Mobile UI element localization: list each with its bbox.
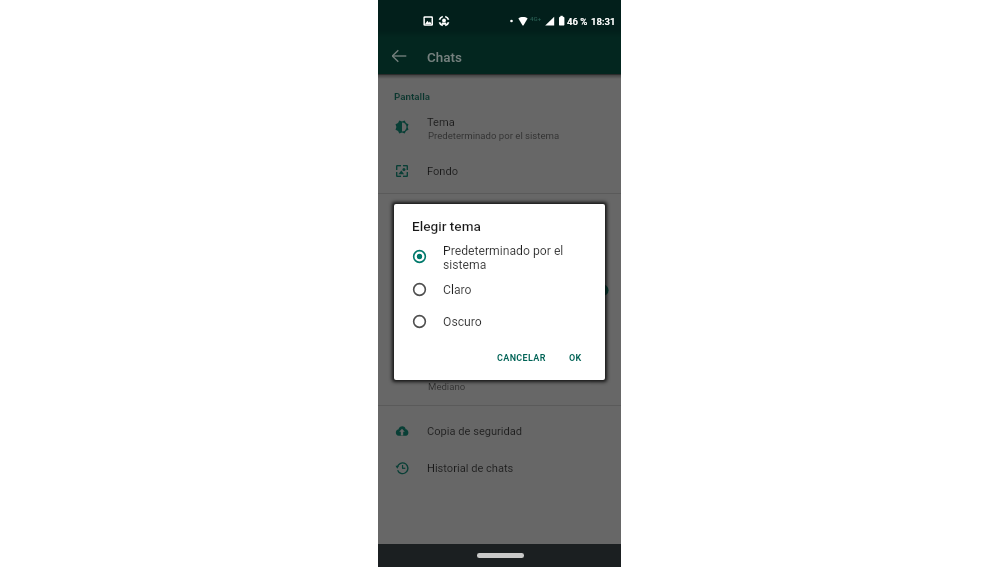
staticText: Pantalla [394,91,431,102]
button[interactable]: Tema [378,105,621,149]
button[interactable]: Oscuro [394,305,605,337]
staticText: Chats [427,50,462,66]
button[interactable]: OK [561,344,589,370]
staticText: Predeterminado por el sistema [443,244,577,272]
button[interactable]: CANCELAR [489,344,553,370]
staticText: Fondo [427,165,459,178]
staticText: Copia de seguridad [427,425,523,438]
button[interactable]: Claro [394,273,605,305]
staticText: 4G+ [530,15,542,22]
staticText: Mediano [428,381,466,392]
button[interactable]: Mediano [378,360,621,404]
staticText: Claro [443,283,472,297]
button[interactable]: Fondo [378,152,621,188]
staticText: Elegir tema [412,218,481,234]
staticText: Oscuro [443,315,482,329]
staticText: Predeterminado por el sistema [428,130,560,141]
button[interactable]: Back [388,43,412,67]
staticText: 46 % [567,16,588,27]
button[interactable]: Predeterminado por el sistema [394,240,605,273]
button[interactable]: Copia de seguridad [378,413,621,450]
button[interactable]: Historial de chats [378,450,621,487]
staticText: OK [569,353,582,364]
staticText: Tema [427,116,455,129]
staticText: CANCELAR [497,353,546,364]
staticText: 18:31 [591,16,616,27]
staticText: Historial de chats [427,462,514,475]
